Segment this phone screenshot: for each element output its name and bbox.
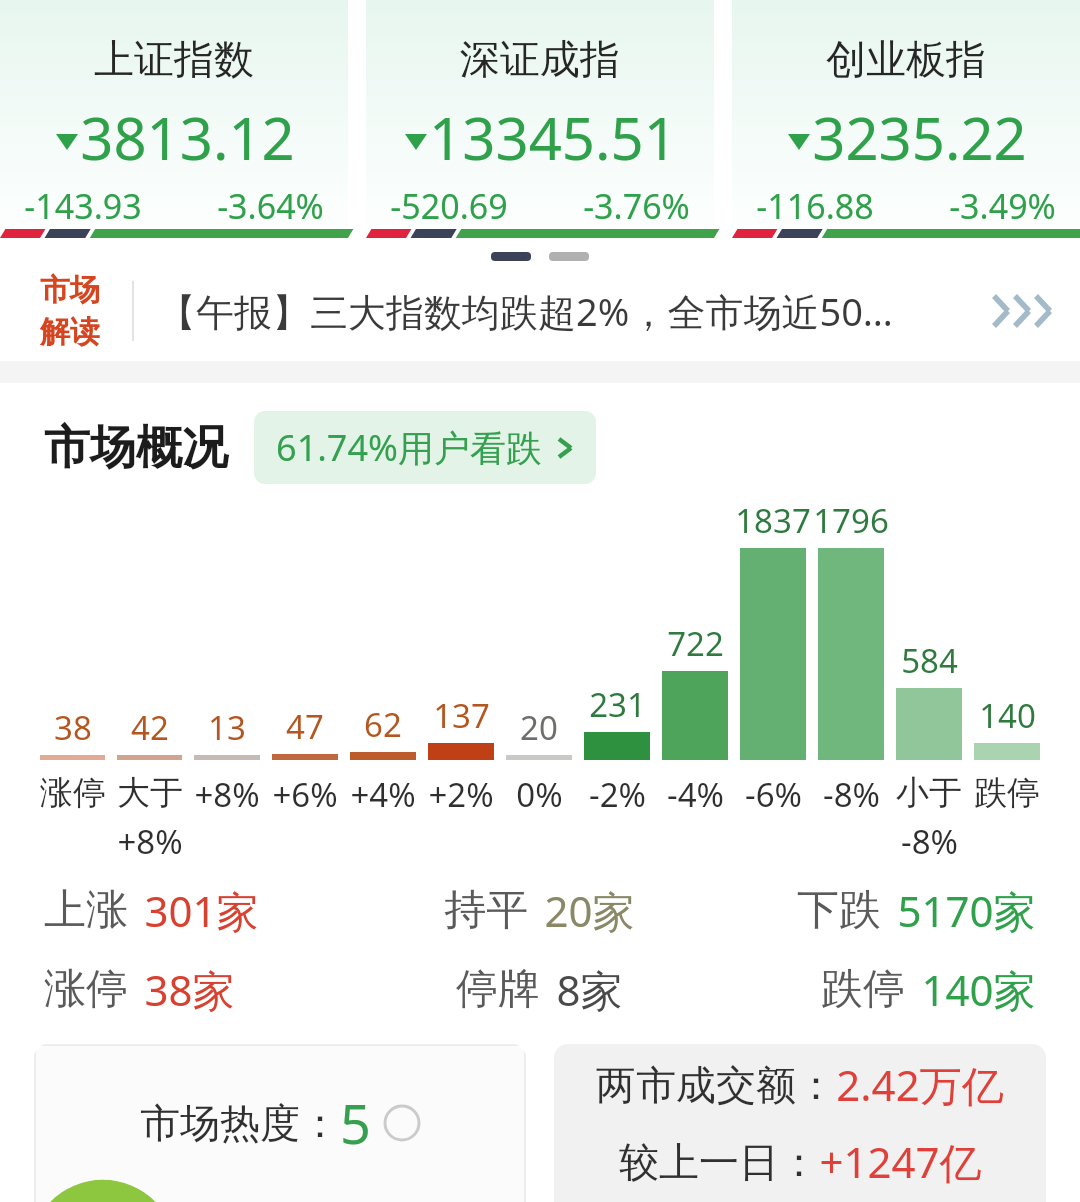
staticText: -3.64%: [217, 183, 324, 229]
staticText: -3.76%: [583, 183, 690, 229]
staticText: +4%: [350, 772, 416, 817]
staticText: 584: [901, 638, 958, 683]
button[interactable]: 两市成交额：: [554, 1044, 1046, 1202]
staticText: -3.49%: [949, 183, 1056, 229]
staticText: -520.69: [390, 183, 508, 229]
staticText: +1247亿: [819, 1133, 982, 1190]
staticText: 47: [286, 704, 324, 749]
staticText: -2%: [589, 772, 646, 817]
staticText: 62: [364, 702, 402, 747]
button[interactable]: 市场热度：: [34, 1044, 526, 1202]
button[interactable]: 创业板指: [732, 0, 1080, 238]
staticText: 20家: [544, 882, 635, 939]
staticText: 大于: [117, 772, 183, 814]
staticText: 8家: [556, 961, 623, 1018]
staticText: 13345.51: [429, 98, 677, 177]
staticText: 停牌: [456, 963, 540, 1016]
staticText: -143.93: [24, 183, 142, 229]
staticText: 42: [131, 705, 169, 750]
staticText: -8%: [901, 819, 958, 864]
staticText: 跌停: [974, 772, 1040, 814]
staticText: +8%: [194, 772, 260, 817]
staticText: 市场概况: [44, 419, 228, 477]
button[interactable]: 深证成指: [366, 0, 714, 238]
staticText: 上涨: [44, 884, 128, 937]
staticText: -116.88: [756, 183, 874, 229]
button[interactable]: 61.74%用户看跌: [254, 411, 596, 484]
staticText: 140: [979, 693, 1036, 738]
staticText: 231: [589, 682, 646, 727]
staticText: 301家: [144, 882, 259, 939]
staticText: 61.74%用户看跌: [276, 423, 542, 472]
button[interactable]: 市场: [0, 261, 1080, 361]
staticText: 722: [667, 621, 724, 666]
staticText: 较上一日：: [619, 1137, 819, 1187]
staticText: 3235.22: [812, 98, 1027, 177]
staticText: 涨停: [40, 772, 106, 814]
staticText: 140家: [921, 961, 1036, 1018]
staticText: -4%: [667, 772, 724, 817]
staticText: +6%: [272, 772, 338, 817]
staticText: +8%: [117, 819, 183, 864]
staticText: 上证指数: [94, 34, 254, 84]
staticText: 【午报】三大指数均跌超2%，全市场近50…: [158, 285, 893, 337]
staticText: 13: [208, 705, 246, 750]
staticText: 两市成交额：: [596, 1060, 836, 1110]
staticText: 市场: [40, 271, 100, 309]
staticText: -6%: [745, 772, 802, 817]
staticText: 20: [520, 705, 558, 750]
button[interactable]: 上证指数: [0, 0, 348, 238]
staticText: 创业板指: [826, 34, 986, 84]
staticText: 5: [340, 1086, 371, 1160]
staticText: 小于: [896, 772, 962, 814]
other: 市场热度说明: [383, 1104, 421, 1142]
staticText: 3813.12: [80, 98, 295, 177]
staticText: 38: [54, 705, 92, 750]
staticText: 市场热度：: [140, 1098, 340, 1148]
staticText: 持平: [444, 884, 528, 937]
staticText: 下跌: [797, 884, 881, 937]
staticText: +2%: [428, 772, 494, 817]
staticText: 解读: [40, 313, 100, 351]
other: More market news: [986, 289, 1056, 333]
staticText: 2.42万亿: [836, 1056, 1004, 1113]
staticText: 深证成指: [460, 34, 620, 84]
staticText: 跌停: [821, 963, 905, 1016]
staticText: 0%: [516, 772, 563, 817]
staticText: 5170家: [897, 882, 1036, 939]
staticText: 涨停: [44, 963, 128, 1016]
staticText: -8%: [823, 772, 880, 817]
staticText: 1796: [813, 498, 889, 543]
staticText: 38家: [144, 961, 235, 1018]
staticText: 1837: [735, 498, 811, 543]
staticText: 137: [433, 693, 490, 738]
